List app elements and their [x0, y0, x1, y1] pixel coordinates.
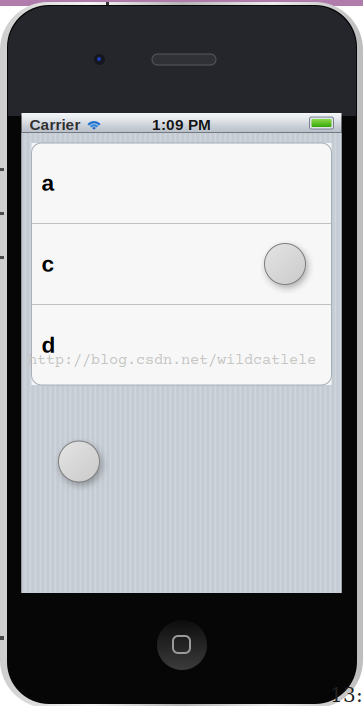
staticText: 13: [330, 683, 363, 706]
staticText: a [41, 170, 54, 196]
staticText: Carrier [29, 116, 80, 133]
staticText: d [41, 332, 55, 358]
staticText: http://blog.csdn.net/wildcatlele [28, 352, 316, 369]
button[interactable]: d [31, 305, 331, 385]
staticText: 1:09 PM [152, 116, 211, 133]
staticText: c [41, 251, 54, 277]
button[interactable]: c [31, 224, 331, 304]
button[interactable]: a [31, 143, 331, 223]
